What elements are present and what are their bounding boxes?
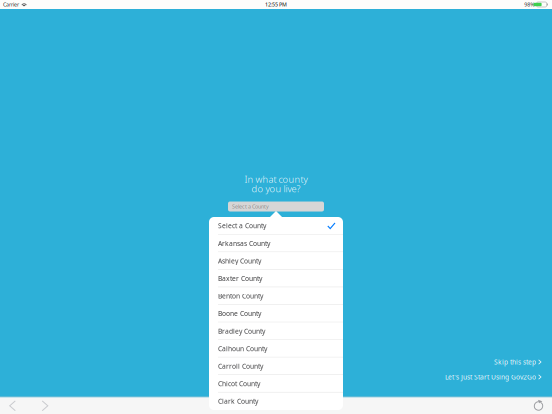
staticText: Bradley County: [218, 327, 265, 335]
button[interactable]: Ashley County: [209, 252, 343, 270]
staticText: Arkansas County: [218, 239, 270, 248]
button[interactable]: Boone County: [209, 305, 343, 322]
staticText: Calhoun County: [218, 344, 267, 353]
staticText: 12:55 PM: [265, 1, 287, 8]
staticText: Boone County: [218, 309, 261, 318]
button[interactable]: Reload: [526, 397, 552, 414]
staticText: Carrier: [3, 1, 19, 8]
staticText: Ashley County: [218, 256, 261, 265]
button[interactable]: Calhoun County: [209, 340, 343, 357]
button[interactable]: Select a County: [209, 217, 343, 234]
button[interactable]: Baxter County: [209, 270, 343, 287]
staticText: do you live?: [251, 182, 300, 195]
staticText: Let's Just Start Using Gov2Go: [445, 373, 536, 381]
staticText: Chicot County: [218, 379, 260, 388]
button[interactable]: Select a County: [228, 201, 324, 211]
staticText: Benton County: [218, 291, 263, 300]
staticText: Select a County: [218, 221, 266, 230]
button[interactable]: Skip this step: [494, 357, 541, 367]
button[interactable]: Forward: [28, 397, 61, 414]
staticText: Clark County: [218, 397, 258, 406]
button[interactable]: Benton County: [209, 287, 343, 305]
staticText: Select a County: [232, 203, 269, 210]
staticText: Carroll County: [218, 362, 263, 371]
staticText: Baxter County: [218, 274, 262, 283]
button[interactable]: Chicot County: [209, 375, 343, 392]
staticText: In what county: [244, 173, 307, 185]
button[interactable]: Clark County: [209, 392, 343, 410]
button[interactable]: Arkansas County: [209, 234, 343, 252]
button[interactable]: Let's Just Start Using Gov2Go: [445, 372, 541, 382]
button[interactable]: Bradley County: [209, 322, 343, 340]
staticText: 98%: [524, 1, 534, 8]
button[interactable]: Back: [0, 397, 28, 414]
staticText: Skip this step: [494, 358, 536, 366]
button[interactable]: Carroll County: [209, 357, 343, 375]
